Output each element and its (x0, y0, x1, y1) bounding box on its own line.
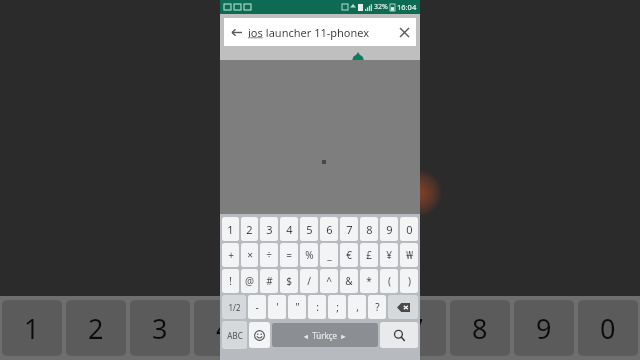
staticText: launcher 11-phonex (263, 25, 370, 40)
button[interactable]: _ (320, 243, 338, 267)
staticText: 9 (536, 310, 552, 347)
staticText: $ (286, 274, 292, 288)
staticText: ◂ Türkçe ▸ (304, 330, 346, 341)
staticText: = (286, 248, 292, 262)
button[interactable]: - (248, 295, 266, 319)
button[interactable]: / (300, 269, 318, 293)
button[interactable]: + (222, 243, 239, 267)
button[interactable]: € (340, 243, 358, 267)
staticText: 2 (246, 222, 253, 237)
button[interactable]: * (360, 269, 378, 293)
button[interactable]: @ (241, 269, 258, 293)
staticText: " (295, 300, 300, 314)
staticText: 5 (306, 222, 313, 237)
staticText: * (366, 274, 372, 288)
button[interactable]: 2 (241, 217, 258, 241)
button[interactable]: 0 (400, 217, 418, 241)
staticText: 1 (227, 222, 234, 237)
staticText: 4 (286, 222, 293, 237)
staticText: £ (366, 248, 372, 262)
button[interactable]: Clear (392, 20, 416, 44)
button[interactable]: $ (280, 269, 298, 293)
staticText: 1 (24, 310, 40, 347)
staticText: 16:04 (397, 2, 417, 12)
button[interactable]: 1/2 (222, 295, 246, 319)
button[interactable]: ) (400, 269, 418, 293)
button[interactable]: 6 (320, 217, 338, 241)
button[interactable]: ◂ Türkçe ▸ (272, 323, 378, 347)
staticText: # (266, 274, 273, 288)
button[interactable]: 4 (280, 217, 298, 241)
staticText: 32% (374, 2, 388, 12)
staticText: 9 (386, 222, 393, 237)
staticText: ! (229, 274, 232, 288)
button[interactable]: ^ (320, 269, 338, 293)
staticText: ABC (227, 330, 243, 341)
staticText: ? (375, 300, 380, 314)
staticText: 6 (326, 222, 333, 237)
button[interactable]: 3 (260, 217, 278, 241)
staticText: , (356, 300, 359, 314)
staticText: 4 (216, 310, 232, 347)
button[interactable]: # (260, 269, 278, 293)
staticText: 8 (472, 310, 488, 347)
staticText: ₩ (406, 248, 413, 262)
button[interactable]: ( (380, 269, 398, 293)
button[interactable]: ? (368, 295, 386, 319)
button[interactable]: ! (222, 269, 239, 293)
button[interactable]: Back (224, 20, 248, 44)
staticText: ; (336, 300, 339, 314)
button[interactable]: 8 (360, 217, 378, 241)
staticText: ( (388, 274, 391, 288)
staticText: 1/2 (228, 302, 241, 313)
staticText: ios (248, 25, 263, 40)
staticText: : (316, 300, 319, 314)
button[interactable]: & (340, 269, 358, 293)
staticText: % (305, 248, 314, 262)
staticText: ' (276, 300, 279, 314)
staticText: - (255, 300, 259, 314)
staticText: 7 (408, 310, 424, 347)
staticText: + (228, 248, 234, 262)
staticText: 0 (406, 222, 413, 237)
staticText: 6 (344, 310, 360, 347)
button[interactable]: : (308, 295, 326, 319)
button[interactable]: Back (224, 18, 416, 46)
button[interactable]: , (348, 295, 366, 319)
staticText: 0 (600, 310, 616, 347)
staticText: & (345, 274, 353, 288)
staticText: 8 (366, 222, 373, 237)
button[interactable]: Search (380, 322, 418, 348)
button[interactable]: 5 (300, 217, 318, 241)
button[interactable]: ₩ (400, 243, 418, 267)
staticText: 2 (88, 310, 104, 347)
button[interactable]: ÷ (260, 243, 278, 267)
staticText: @ (245, 274, 254, 288)
button[interactable]: 9 (380, 217, 398, 241)
button[interactable]: Backspace (388, 295, 418, 319)
staticText: ^ (326, 274, 332, 288)
button[interactable]: " (288, 295, 306, 319)
staticText: 3 (266, 222, 273, 237)
button[interactable]: × (241, 243, 258, 267)
staticText: / (307, 274, 311, 288)
button[interactable]: 1 (222, 217, 239, 241)
button[interactable]: Emoji (249, 322, 270, 348)
staticText: ÷ (266, 248, 272, 262)
staticText: € (346, 248, 352, 262)
staticText: 7 (346, 222, 353, 237)
staticText: _ (327, 248, 332, 262)
staticText: 5 (280, 310, 296, 347)
button[interactable]: ¥ (380, 243, 398, 267)
button[interactable]: = (280, 243, 298, 267)
staticText: 3 (152, 310, 168, 347)
staticText: × (247, 248, 253, 262)
button[interactable]: ; (328, 295, 346, 319)
button[interactable]: 7 (340, 217, 358, 241)
staticText: ¥ (386, 248, 392, 262)
staticText: ) (408, 274, 411, 288)
button[interactable]: % (300, 243, 318, 267)
button[interactable]: £ (360, 243, 378, 267)
button[interactable]: ' (268, 295, 286, 319)
button[interactable]: ABC (222, 321, 247, 349)
